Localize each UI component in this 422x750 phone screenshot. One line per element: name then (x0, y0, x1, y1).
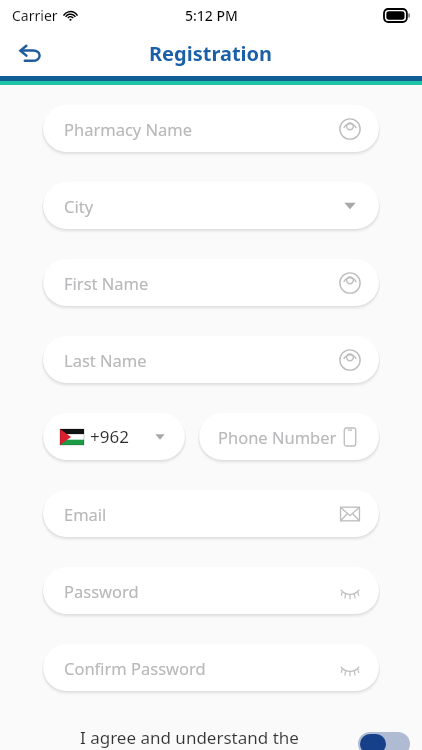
button[interactable]: Confirm Password (43, 644, 379, 691)
staticText: Pharmacy Name (64, 118, 193, 140)
staticText: City (64, 195, 94, 217)
staticText: Carrier (12, 6, 58, 25)
button[interactable]: Pharmacy Name (43, 105, 379, 152)
button[interactable]: Password (43, 567, 379, 614)
staticText: Phone Number (218, 426, 337, 448)
button[interactable]: City (43, 182, 379, 229)
button[interactable]: Back (8, 31, 52, 75)
staticText: Email (64, 503, 107, 525)
button[interactable]: +962 (43, 413, 185, 460)
staticText: Registration (149, 40, 273, 67)
staticText: First Name (64, 272, 149, 294)
button[interactable]: First Name (43, 259, 379, 306)
staticText: +962 (90, 425, 129, 448)
button[interactable]: Email (43, 490, 379, 537)
button[interactable]: Agree toggle (358, 732, 410, 750)
button[interactable]: Last Name (43, 336, 379, 383)
staticText: 5:12 PM (185, 6, 238, 25)
staticText: Last Name (64, 349, 147, 371)
staticText: Password (64, 580, 139, 602)
button[interactable]: Phone Number (199, 413, 379, 460)
staticText: Confirm Password (64, 657, 206, 679)
staticText: I agree and understand the (80, 726, 299, 749)
